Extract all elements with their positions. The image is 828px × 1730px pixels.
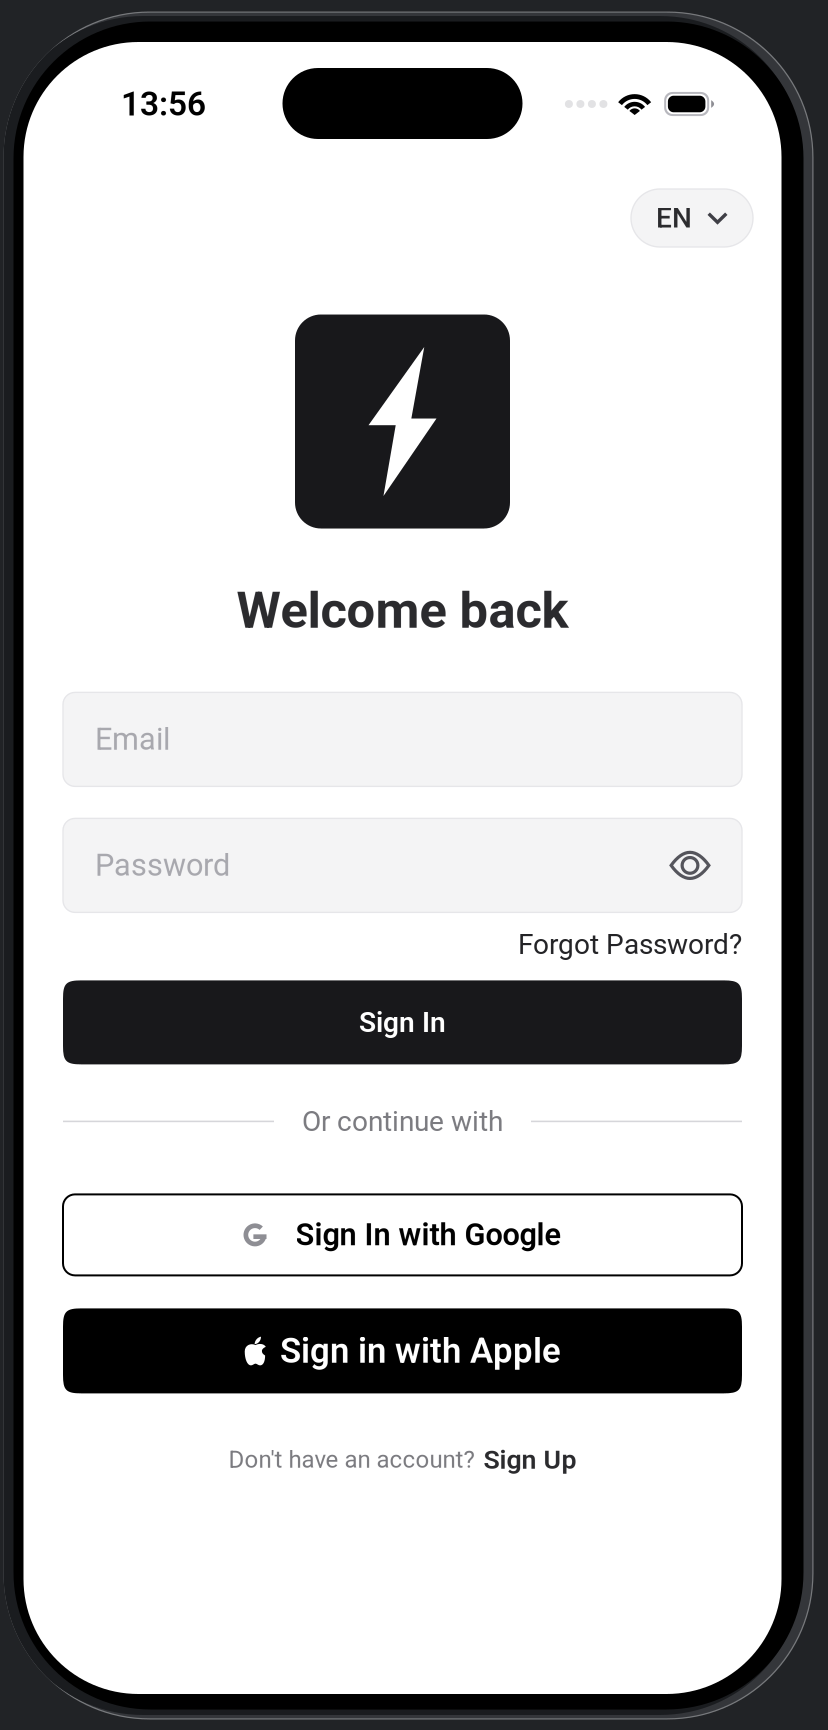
button[interactable]: Sign in with Apple bbox=[63, 1308, 742, 1393]
staticText: Email bbox=[95, 722, 170, 757]
button[interactable]: Sign In with Google bbox=[63, 1194, 742, 1275]
staticText: Password bbox=[95, 848, 230, 883]
staticText: Sign In bbox=[359, 1006, 446, 1038]
staticText: Sign In with Google bbox=[295, 1217, 561, 1252]
staticText: EN bbox=[656, 202, 692, 234]
staticText: Forgot Password? bbox=[518, 928, 742, 960]
staticText: Welcome back bbox=[236, 581, 568, 639]
button[interactable]: Forgot Password? bbox=[508, 925, 742, 963]
button[interactable]: Sign In bbox=[63, 980, 742, 1064]
staticText: 13:56 bbox=[121, 85, 206, 123]
staticText: Sign in with Apple bbox=[280, 1331, 561, 1371]
button[interactable]: EN bbox=[631, 189, 753, 247]
button[interactable]: Sign Up bbox=[483, 1444, 576, 1475]
staticText: Sign Up bbox=[483, 1444, 576, 1475]
staticText: Or continue with bbox=[302, 1105, 503, 1137]
button[interactable]: Show password bbox=[659, 834, 721, 896]
staticText: Don't have an account? bbox=[228, 1446, 474, 1473]
